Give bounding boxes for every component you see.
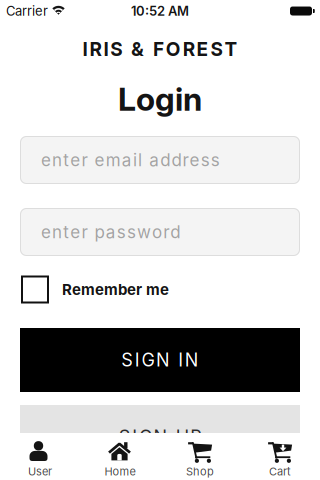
staticText: U xyxy=(176,426,189,448)
staticText: S xyxy=(119,426,131,448)
staticText: a xyxy=(122,150,132,170)
button[interactable]: Cart xyxy=(240,433,320,480)
staticText xyxy=(169,426,174,448)
button[interactable]: e xyxy=(20,136,300,184)
staticText: e xyxy=(95,150,105,170)
staticText: r xyxy=(182,150,188,170)
staticText: R xyxy=(89,37,101,60)
staticText: r xyxy=(81,150,87,170)
staticText: Login xyxy=(118,80,202,118)
staticText: I xyxy=(83,37,88,60)
staticText: a xyxy=(149,150,159,170)
staticText: O xyxy=(166,37,181,60)
staticText: t xyxy=(63,222,69,242)
staticText: Cart xyxy=(269,465,291,478)
staticText: 10:52 AM xyxy=(131,3,189,19)
staticText: I xyxy=(132,426,137,448)
button[interactable]: Home xyxy=(80,433,160,480)
button[interactable]: Remember me xyxy=(0,275,320,304)
button[interactable]: S xyxy=(20,405,300,469)
button[interactable]: e xyxy=(20,208,300,256)
staticText: F xyxy=(153,37,164,60)
staticText: n xyxy=(52,150,62,170)
staticText: i xyxy=(133,150,137,170)
staticText: S xyxy=(110,37,122,60)
staticText: R xyxy=(183,37,195,60)
staticText: N xyxy=(153,426,167,448)
staticText: Shop xyxy=(186,465,214,478)
staticText: N xyxy=(156,349,170,371)
staticText: s xyxy=(201,150,210,170)
staticText: d xyxy=(160,150,170,170)
staticText: e xyxy=(190,150,200,170)
staticText: e xyxy=(41,222,51,242)
staticText: Remember me xyxy=(62,280,169,298)
staticText: o xyxy=(152,222,162,242)
staticText: e xyxy=(41,150,51,170)
staticText: n xyxy=(52,222,62,242)
staticText: N xyxy=(185,349,199,371)
button[interactable]: User xyxy=(0,433,80,480)
staticText: l xyxy=(138,150,142,170)
staticText: t xyxy=(63,150,69,170)
staticText: Home xyxy=(104,465,135,478)
staticText: I xyxy=(178,349,183,371)
button[interactable]: Shop xyxy=(160,433,240,480)
staticText: e xyxy=(70,222,80,242)
staticText: E xyxy=(197,37,209,60)
staticText: G xyxy=(141,349,154,371)
staticText: I xyxy=(135,349,140,371)
staticText: S xyxy=(121,349,133,371)
staticText: d xyxy=(171,150,181,170)
staticText: d xyxy=(170,222,180,242)
staticText: T xyxy=(224,37,237,60)
staticText: m xyxy=(106,150,121,170)
staticText: s xyxy=(127,222,136,242)
button[interactable]: S xyxy=(20,328,300,392)
staticText: s xyxy=(117,222,126,242)
staticText: e xyxy=(70,150,80,170)
staticText: r xyxy=(163,222,169,242)
staticText: s xyxy=(211,150,220,170)
staticText: P xyxy=(190,426,201,448)
staticText: S xyxy=(210,37,222,60)
staticText: w xyxy=(137,222,151,242)
staticText: & xyxy=(131,37,144,60)
staticText: r xyxy=(81,222,87,242)
staticText: a xyxy=(106,222,116,242)
staticText: Carrier xyxy=(6,3,48,19)
staticText: G xyxy=(139,426,152,448)
staticText: p xyxy=(95,222,105,242)
staticText: User xyxy=(28,465,52,478)
staticText: I xyxy=(103,37,108,60)
